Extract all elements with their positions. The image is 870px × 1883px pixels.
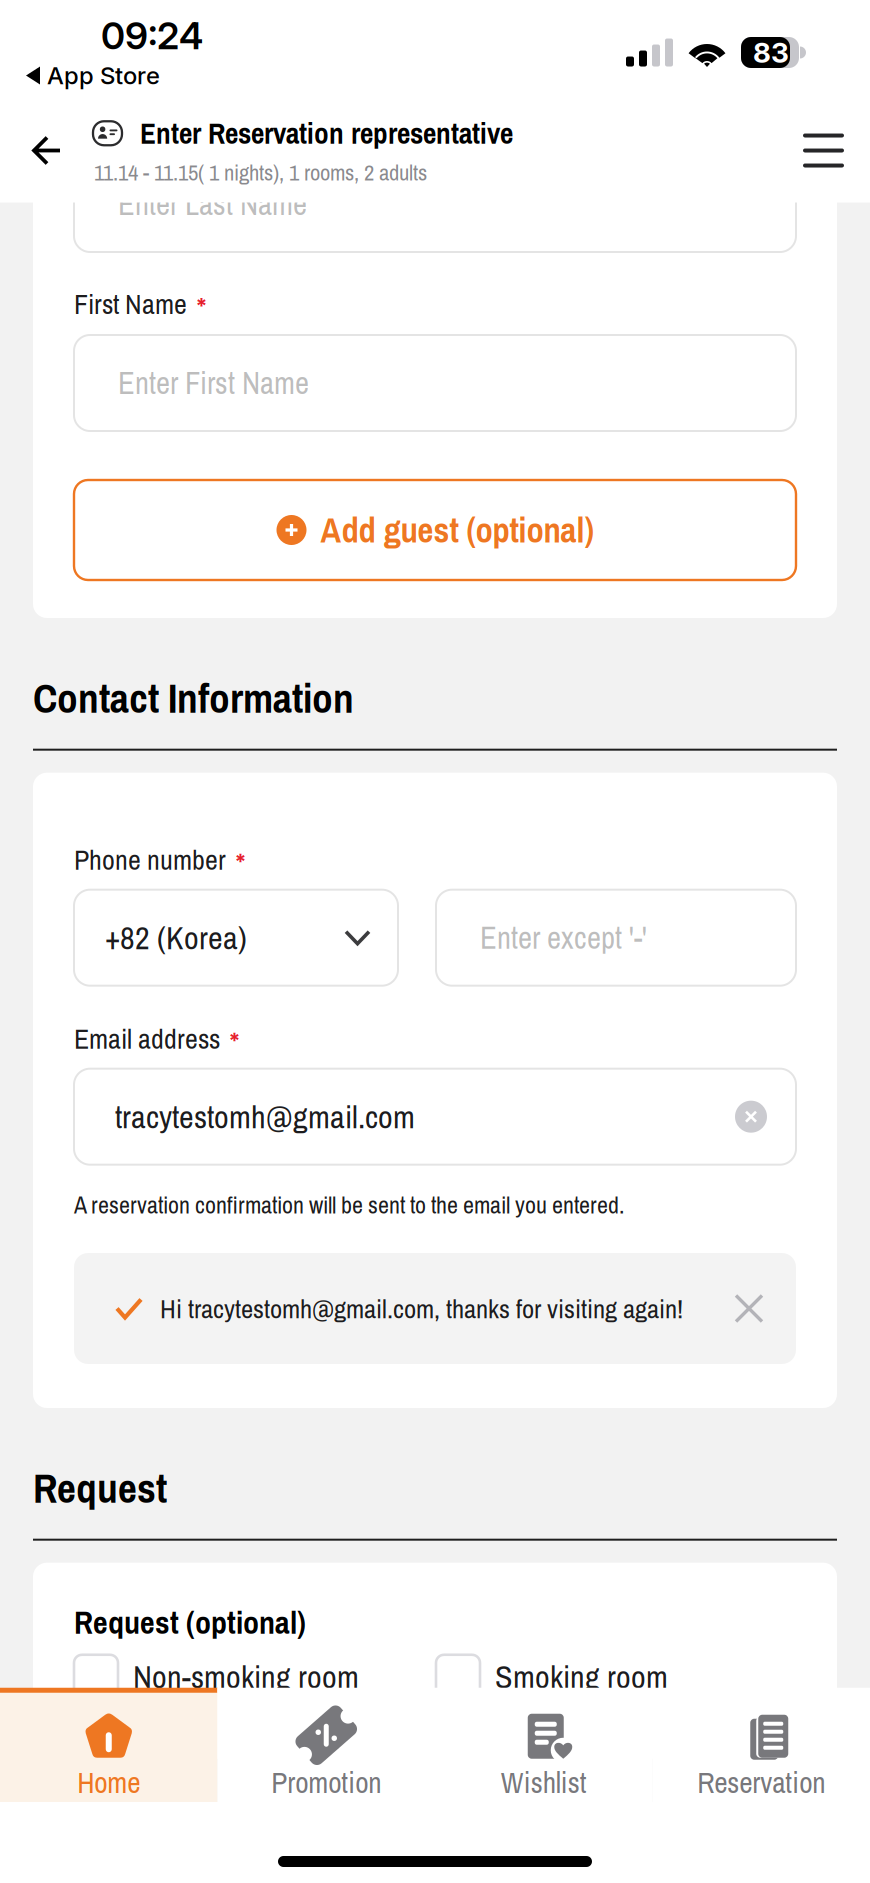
staticText: * xyxy=(230,1023,239,1060)
staticText: Enter Reservation representative xyxy=(140,113,513,153)
button[interactable]: Smoking room xyxy=(436,1655,668,1699)
staticText: tracytestomh@gmail.com xyxy=(115,1095,415,1138)
staticText: Smoking room xyxy=(495,1655,668,1698)
staticText: Email address xyxy=(74,1020,220,1057)
staticText: Contact Information xyxy=(33,670,354,726)
staticText: Hi tracytestomh@gmail.com, thanks for vi… xyxy=(160,1290,683,1326)
button[interactable]: Clear email xyxy=(715,1081,796,1153)
staticText: A reservation confirmation will be sent … xyxy=(74,1189,624,1221)
staticText: Phone number xyxy=(74,841,226,878)
staticText: 83 xyxy=(753,36,789,69)
staticText: Request (optional) xyxy=(74,1601,306,1644)
staticText: Enter First Name xyxy=(118,362,309,404)
button[interactable]: Non-smoking room xyxy=(74,1655,436,1699)
staticText: 09:24 xyxy=(101,13,203,58)
staticText: First Name xyxy=(74,285,187,323)
staticText: App Store xyxy=(47,61,160,90)
staticText: +82 (Korea) xyxy=(105,916,247,959)
button[interactable]: Wishlist xyxy=(435,1688,652,1802)
staticText: * xyxy=(236,844,245,881)
staticText: Enter except '-' xyxy=(480,917,647,958)
staticText: * xyxy=(197,288,206,326)
staticText: Request xyxy=(33,1460,167,1516)
staticText: Enter Last Name xyxy=(118,183,307,225)
button[interactable]: App Store xyxy=(0,0,174,98)
button[interactable]: Add guest (optional) xyxy=(74,480,796,580)
staticText: Promotion xyxy=(271,1763,381,1802)
button[interactable]: Back xyxy=(0,102,84,202)
button[interactable]: +82 (Korea) xyxy=(74,890,398,986)
staticText: Reservation xyxy=(697,1763,825,1802)
button[interactable]: Menu xyxy=(0,102,87,203)
staticText: Wishlist xyxy=(501,1763,587,1802)
staticText: 11.14 - 11.15( 1 nights), 1 rooms, 2 adu… xyxy=(94,157,427,187)
button[interactable]: Reservation xyxy=(652,1688,870,1802)
staticText: Home xyxy=(77,1763,140,1802)
staticText: Non-smoking room xyxy=(133,1655,359,1698)
button[interactable]: Home xyxy=(0,1688,217,1802)
button[interactable]: Dismiss message xyxy=(716,1265,796,1351)
button[interactable]: Promotion xyxy=(217,1688,435,1802)
staticText: Add guest (optional) xyxy=(320,507,593,553)
